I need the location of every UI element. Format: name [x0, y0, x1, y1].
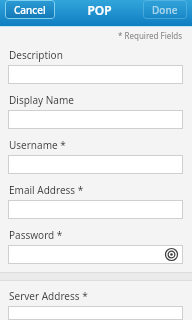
button[interactable] [8, 65, 183, 84]
staticText: Email Address * [9, 183, 84, 197]
button[interactable] [8, 306, 183, 320]
button[interactable]: Done [143, 0, 187, 19]
staticText: Description [9, 48, 63, 62]
button[interactable]: Show password [164, 247, 179, 262]
staticText: Server Address * [9, 289, 88, 303]
staticText: Display Name [9, 93, 74, 107]
button[interactable]: Show password [8, 245, 183, 264]
button[interactable] [8, 200, 183, 219]
staticText: * Required Fields [118, 30, 183, 41]
staticText: Password * [9, 228, 63, 242]
staticText: Cancel [14, 3, 46, 17]
staticText: POP [87, 2, 112, 18]
button[interactable]: Cancel [5, 0, 55, 19]
staticText: Done [152, 3, 178, 17]
button[interactable] [8, 155, 183, 174]
staticText: Username * [9, 138, 66, 152]
button[interactable] [8, 110, 183, 129]
